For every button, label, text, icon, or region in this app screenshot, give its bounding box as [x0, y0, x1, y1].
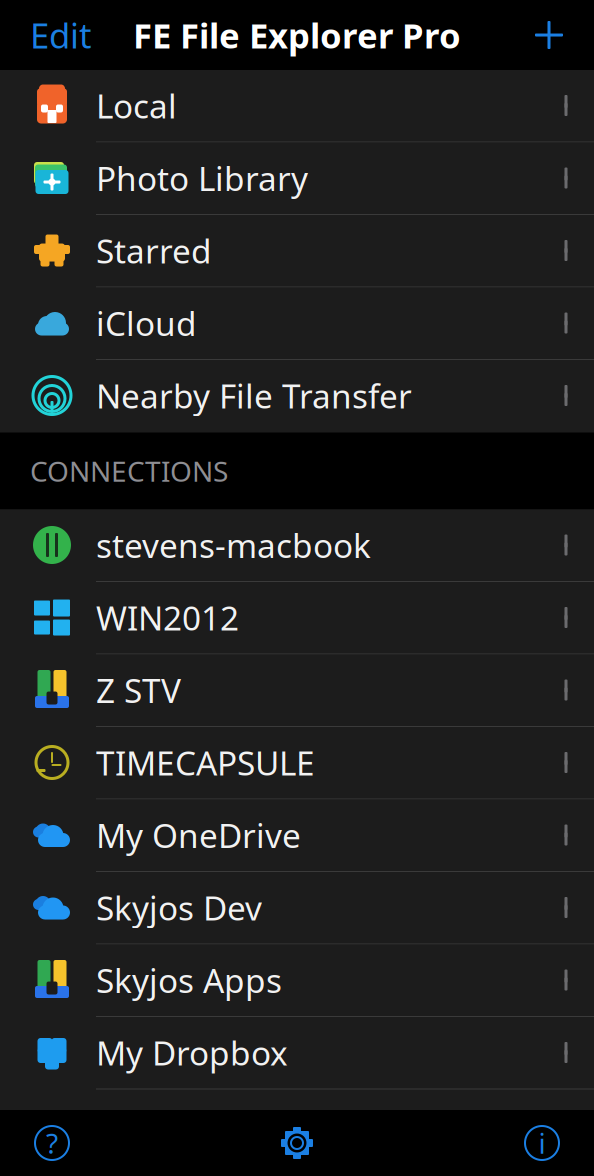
staticText: My OneDrive: [96, 813, 301, 857]
button[interactable]: Photo Library: [0, 142, 594, 215]
button[interactable]: Starred: [0, 215, 594, 287]
button[interactable]: My Dropbox: [0, 1017, 594, 1089]
staticText: Nearby File Transfer: [96, 373, 412, 418]
button[interactable]: My OneDrive: [0, 799, 594, 872]
button[interactable]: Z STV: [0, 654, 594, 727]
button[interactable]: Skyjos Apps: [0, 944, 594, 1017]
staticText: stevens-macbook: [96, 523, 371, 567]
staticText: Skyjos Apps: [96, 958, 282, 1002]
staticText: i: [538, 1124, 545, 1162]
button[interactable]: About: [502, 1110, 582, 1176]
staticText: Local: [96, 83, 177, 128]
button[interactable]: WIN2012: [0, 582, 594, 654]
button[interactable]: Help: [12, 1110, 92, 1176]
button[interactable]: Local: [0, 70, 594, 142]
staticText: Z STV: [96, 668, 181, 712]
button[interactable]: Nearby File Transfer: [0, 360, 594, 432]
staticText: Edit: [30, 12, 92, 58]
staticText: Starred: [96, 228, 212, 273]
staticText: iCloud: [96, 301, 197, 345]
staticText: FE File Explorer Pro: [133, 12, 461, 58]
staticText: WIN2012: [96, 595, 239, 640]
button[interactable]: stevens-macbook: [0, 509, 594, 582]
staticText: ?: [46, 1124, 58, 1162]
button[interactable]: Settings: [257, 1110, 337, 1176]
button[interactable]: iCloud: [0, 287, 594, 360]
button[interactable]: Edit: [16, 2, 106, 68]
button[interactable]: Add connection: [526, 12, 572, 58]
staticText: Skyjos Dev: [96, 885, 262, 930]
staticText: TIMECAPSULE: [96, 740, 315, 785]
staticText: CONNECTIONS: [30, 452, 228, 490]
button[interactable]: Skyjos Dev: [0, 872, 594, 944]
button[interactable]: TIMECAPSULE: [0, 727, 594, 799]
staticText: My Dropbox: [96, 1030, 288, 1075]
staticText: Photo Library: [96, 156, 308, 200]
